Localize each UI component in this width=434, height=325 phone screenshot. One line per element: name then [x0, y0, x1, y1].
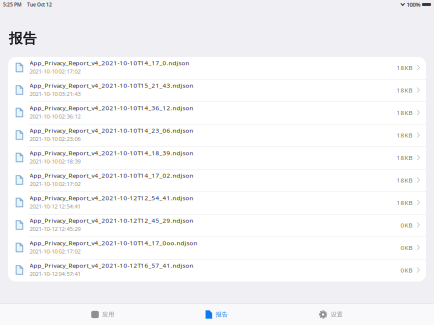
staticText: 应用: [102, 311, 114, 318]
button[interactable]: App_Privacy_Report_v4_2021-10-10T14_17_0…: [8, 169, 426, 191]
button[interactable]: 应用: [91, 311, 114, 318]
staticText: 18KB: [396, 153, 412, 162]
staticText: 2021-10-12 12:45:29: [29, 225, 80, 233]
staticText: 18KB: [396, 176, 412, 184]
staticText: 报告: [216, 311, 228, 318]
button[interactable]: 设置: [319, 310, 343, 319]
staticText: 18KB: [396, 198, 412, 207]
staticText: 2021-10-10 02:17:02: [29, 180, 80, 188]
staticText: 0KB: [400, 221, 412, 229]
staticText: App_Privacy_Report_v4_2021-10-10T14_17_0…: [29, 59, 189, 67]
button[interactable]: 报告: [206, 310, 228, 319]
button[interactable]: App_Privacy_Report_v4_2021-10-12T12_54_4…: [8, 191, 426, 214]
staticText: App_Privacy_Report_v4_2021-10-12T12_45_2…: [29, 216, 193, 225]
button[interactable]: App_Privacy_Report_v4_2021-10-10T15_21_4…: [8, 79, 426, 101]
staticText: 18KB: [396, 63, 412, 72]
staticText: App_Privacy_Report_v4_2021-10-10T14_17_0…: [29, 239, 197, 247]
button[interactable]: App_Privacy_Report_v4_2021-10-12T12_45_2…: [8, 214, 426, 236]
staticText: 18KB: [396, 86, 412, 94]
staticText: App_Privacy_Report_v4_2021-10-10T14_36_1…: [29, 104, 193, 112]
button[interactable]: App_Privacy_Report_v4_2021-10-12T16_57_4…: [8, 259, 426, 281]
staticText: 0KB: [400, 243, 412, 252]
staticText: Tue Oct 12: [27, 1, 52, 8]
button[interactable]: App_Privacy_Report_v4_2021-10-10T14_18_3…: [8, 146, 426, 169]
staticText: App_Privacy_Report_v4_2021-10-10T14_18_3…: [29, 149, 193, 157]
staticText: 2021-10-10 02:17:02: [29, 67, 80, 75]
staticText: 2021-10-10 02:36:12: [29, 112, 80, 120]
staticText: 2021-10-12 04:57:41: [29, 270, 80, 278]
staticText: App_Privacy_Report_v4_2021-10-10T14_17_0…: [29, 171, 193, 180]
staticText: 18KB: [396, 108, 412, 117]
staticText: 2021-10-12 12:54:41: [29, 202, 80, 210]
staticText: App_Privacy_Report_v4_2021-10-12T16_57_4…: [29, 261, 193, 270]
button[interactable]: App_Privacy_Report_v4_2021-10-10T14_23_0…: [8, 124, 426, 146]
staticText: App_Privacy_Report_v4_2021-10-12T12_54_4…: [29, 194, 193, 202]
staticText: 2021-10-10 03:21:43: [29, 90, 80, 98]
staticText: 0KB: [400, 266, 412, 274]
button[interactable]: App_Privacy_Report_v4_2021-10-10T14_17_0…: [8, 236, 426, 259]
staticText: App_Privacy_Report_v4_2021-10-10T15_21_4…: [29, 81, 193, 90]
staticText: App_Privacy_Report_v4_2021-10-10T14_23_0…: [29, 126, 193, 135]
staticText: 报告: [9, 30, 37, 47]
staticText: 2021-10-10 02:17:02: [29, 247, 80, 255]
staticText: 100%: [406, 0, 420, 8]
button[interactable]: App_Privacy_Report_v4_2021-10-10T14_17_0…: [8, 57, 426, 79]
staticText: 2021-10-10 02:18:39: [29, 157, 80, 165]
staticText: 5:25 PM: [3, 1, 22, 8]
staticText: 2021-10-10 02:23:06: [29, 135, 80, 143]
button[interactable]: App_Privacy_Report_v4_2021-10-10T14_36_1…: [8, 101, 426, 124]
staticText: 设置: [331, 311, 343, 318]
staticText: 18KB: [396, 131, 412, 139]
